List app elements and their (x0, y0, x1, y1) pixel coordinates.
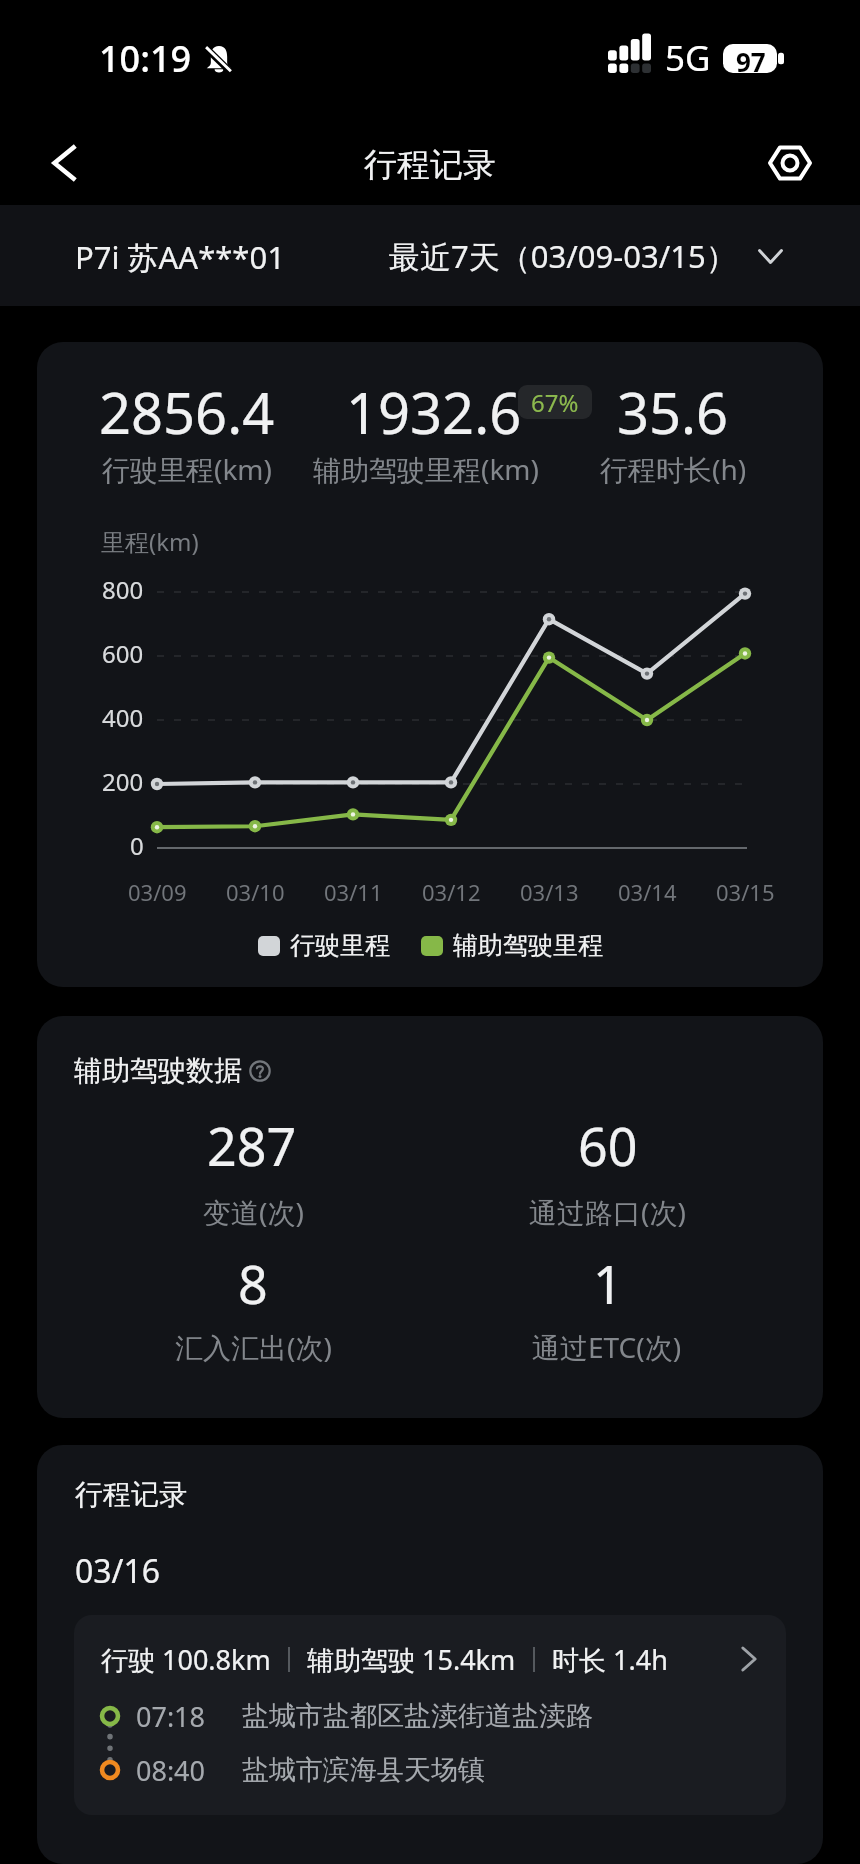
staticText: 03/14 (618, 877, 677, 907)
staticText: 行程时长(h) (600, 450, 747, 488)
staticText: 08:40 (136, 1752, 206, 1789)
button[interactable]: 最近7天（03/09-03/15） (389, 235, 783, 277)
staticText: 10:19 (99, 34, 192, 83)
staticText: 60 (578, 1110, 638, 1181)
staticText: 600 (102, 637, 144, 670)
staticText: 盐城市滨海县天场镇 (242, 1753, 485, 1787)
staticText: 03/16 (75, 1549, 161, 1593)
staticText: 67% (531, 386, 579, 419)
staticText: 5G (665, 34, 711, 82)
staticText: 8 (238, 1248, 268, 1319)
staticText: 2856.4 (99, 374, 275, 450)
staticText: 07:18 (136, 1698, 206, 1735)
staticText: 辅助驾驶 15.4km (307, 1641, 516, 1678)
staticText: 03/10 (226, 877, 285, 907)
staticText: 时长 1.4h (552, 1641, 668, 1678)
staticText: 800 (102, 573, 144, 606)
staticText: 里程(km) (101, 525, 199, 558)
staticText: 35.6 (617, 374, 729, 450)
staticText: 03/12 (422, 877, 481, 907)
staticText: 通过路口(次) (529, 1193, 686, 1231)
staticText: 变道(次) (203, 1193, 304, 1231)
staticText: 0 (130, 829, 144, 862)
staticText: 行程记录 (364, 144, 496, 186)
other: Trip details (738, 1646, 760, 1672)
staticText: 287 (207, 1110, 297, 1181)
staticText: 1932.6 (346, 374, 522, 450)
staticText: 行程记录 (75, 1477, 187, 1512)
staticText: 03/09 (128, 877, 187, 907)
button[interactable]: Settings (754, 127, 826, 199)
staticText: 行驶 100.8km (101, 1641, 271, 1678)
staticText: 97 (736, 44, 766, 73)
staticText: 400 (102, 701, 144, 734)
button[interactable]: Back (28, 127, 100, 199)
staticText: 盐城市盐都区盐渎街道盐渎路 (242, 1699, 593, 1733)
staticText: 200 (102, 765, 144, 798)
staticText: 辅助驾驶里程(km) (313, 450, 539, 488)
staticText: 03/13 (520, 877, 579, 907)
staticText: 通过ETC(次) (532, 1328, 682, 1366)
staticText: 最近7天（03/09-03/15） (389, 235, 737, 277)
staticText: 汇入汇出(次) (175, 1328, 332, 1366)
staticText: 辅助驾驶数据 (74, 1053, 242, 1088)
staticText: 辅助驾驶里程 (453, 930, 603, 961)
staticText: 行驶里程(km) (102, 450, 272, 488)
button[interactable]: 行驶 100.8km (74, 1615, 786, 1815)
staticText: 03/11 (324, 877, 383, 907)
staticText: 03/15 (716, 877, 775, 907)
staticText: P7i 苏AA***01 (75, 236, 285, 278)
staticText: 行驶里程 (290, 930, 390, 961)
staticText: 1 (593, 1248, 623, 1319)
